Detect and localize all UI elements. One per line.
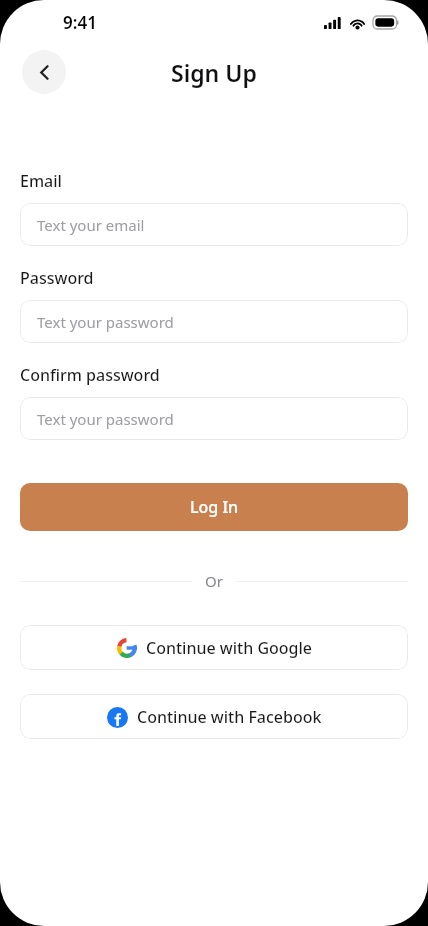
staticText: Text your password [37,312,174,332]
staticText: Sign Up [171,57,257,88]
button[interactable]: Text your email [20,203,408,246]
staticText: Email [20,170,62,192]
button[interactable]: Text your password [20,397,408,440]
staticText: Password [20,267,94,289]
staticText: Text your password [37,409,174,429]
staticText: 9:41 [63,11,97,34]
button[interactable]: Text your password [20,300,408,343]
button[interactable]: Log In [20,483,408,531]
staticText: Confirm password [20,364,160,386]
button[interactable]: Continue with Facebook [20,694,408,739]
button[interactable]: Continue with Google [20,625,408,670]
staticText: Log In [190,496,239,518]
staticText: Continue with Facebook [137,706,322,728]
staticText: Continue with Google [146,637,312,659]
staticText: Text your email [37,215,145,235]
button[interactable]: Back [22,50,66,94]
staticText: Or [205,571,223,591]
